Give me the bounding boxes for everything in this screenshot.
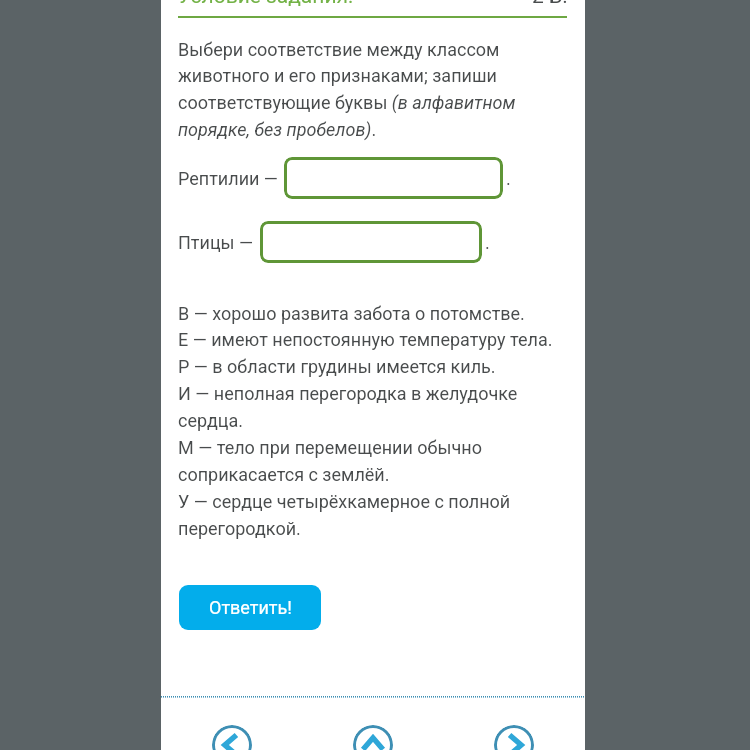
- button[interactable]: [260, 221, 482, 263]
- staticText: Ответить!: [209, 597, 292, 618]
- staticText: Птицы —: [178, 232, 254, 253]
- staticText: Условие задания:: [178, 0, 354, 9]
- staticText: В — хорошо развита забота о потомстве. Е…: [178, 303, 578, 540]
- button[interactable]: Ответить!: [179, 585, 321, 630]
- button[interactable]: [284, 157, 503, 199]
- staticText: Рептилии —: [178, 168, 278, 189]
- button[interactable]: Previous: [212, 725, 252, 750]
- staticText: 2 Б.: [532, 0, 568, 9]
- button[interactable]: Up: [353, 725, 393, 750]
- staticText: Выбери соответствие между классом животн…: [178, 39, 528, 141]
- button[interactable]: Next: [494, 725, 534, 750]
- staticText: .: [506, 168, 511, 189]
- staticText: .: [485, 232, 490, 253]
